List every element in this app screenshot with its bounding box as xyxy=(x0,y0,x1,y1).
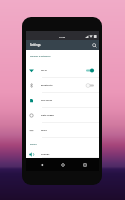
button[interactable]: Back xyxy=(35,158,48,171)
staticText: More xyxy=(41,129,47,132)
staticText: Wireless & networks xyxy=(30,55,51,58)
button[interactable]: Home xyxy=(56,158,69,171)
button[interactable]: Sounds xyxy=(26,150,99,158)
staticText: Device xyxy=(30,143,37,146)
staticText: Wi-Fi xyxy=(41,69,47,72)
button[interactable]: More xyxy=(26,123,99,138)
button[interactable]: Data usage xyxy=(26,108,99,123)
staticText: Bluetooth xyxy=(41,84,53,87)
button[interactable]: Wi-Fi xyxy=(26,63,99,78)
button[interactable]: Search xyxy=(90,41,99,50)
button[interactable]: Recent apps xyxy=(78,158,91,171)
staticText: SIM cards xyxy=(41,99,53,102)
button[interactable]: SIM cards xyxy=(26,93,99,108)
staticText: Sounds xyxy=(41,153,50,156)
staticText: Data usage xyxy=(41,114,54,117)
button[interactable]: Bluetooth xyxy=(26,78,99,93)
staticText: 12:30 xyxy=(59,35,66,38)
staticText: Settings xyxy=(30,43,41,47)
